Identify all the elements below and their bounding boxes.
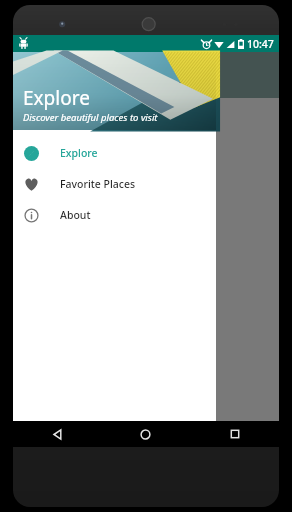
- staticText: GO: [68, 142, 87, 157]
- button[interactable]: Explore: [13, 137, 216, 168]
- button[interactable]: Home: [101, 421, 190, 447]
- button[interactable]: Recent apps: [190, 421, 279, 447]
- staticText: Favorite Places: [60, 177, 136, 191]
- staticText: About: [60, 208, 91, 222]
- staticText: Explore: [60, 146, 98, 160]
- button[interactable]: About: [13, 199, 216, 230]
- staticText: Explore: [23, 85, 90, 111]
- button[interactable]: Back: [13, 421, 101, 447]
- button[interactable]: GO: [35, 131, 120, 168]
- staticText: Discover beautiful places to visit: [23, 111, 158, 124]
- staticText: 10:47: [247, 37, 274, 51]
- button[interactable]: Favorite Places: [13, 168, 216, 199]
